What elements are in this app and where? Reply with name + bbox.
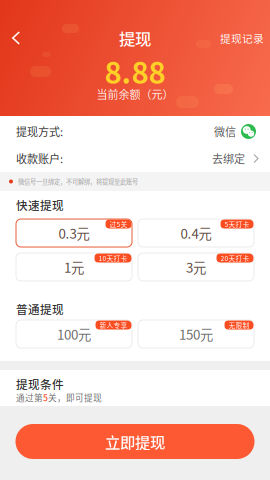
staticText: 5 bbox=[43, 391, 48, 404]
button[interactable]: 0.3元 bbox=[16, 219, 132, 247]
staticText: 微信 bbox=[214, 123, 236, 139]
button[interactable]: 100元 bbox=[16, 320, 132, 348]
staticText: 快速提现 bbox=[16, 197, 64, 213]
button[interactable]: 3元 bbox=[138, 253, 254, 281]
button[interactable]: 提现记录 bbox=[220, 25, 264, 51]
staticText: 150元 bbox=[179, 324, 213, 344]
staticText: 去绑定 bbox=[212, 150, 245, 166]
staticText: 提现方式: bbox=[16, 123, 63, 139]
staticText: 100元 bbox=[57, 324, 91, 344]
button[interactable]: 立即提现 bbox=[15, 424, 254, 459]
button[interactable]: 返回 bbox=[5, 25, 27, 51]
staticText: 提现 bbox=[119, 26, 151, 50]
staticText: 1元 bbox=[64, 257, 84, 277]
staticText: 8.88 bbox=[104, 50, 165, 92]
button[interactable]: 150元 bbox=[138, 320, 254, 348]
staticText: 关，即可提现 bbox=[48, 391, 102, 404]
staticText: 10天打卡 bbox=[98, 253, 127, 263]
staticText: 微信号一旦绑定，不可解绑，将提现至此账号 bbox=[18, 177, 138, 186]
staticText: 新人专享 bbox=[99, 320, 127, 330]
staticText: 提现条件 bbox=[16, 376, 64, 392]
staticText: 立即提现 bbox=[105, 430, 165, 453]
staticText: 5天打卡 bbox=[224, 219, 249, 229]
staticText: 无限制 bbox=[228, 320, 249, 330]
staticText: 普通提现 bbox=[16, 301, 64, 317]
staticText: 当前余额（元） bbox=[96, 86, 173, 102]
staticText: 通过第 bbox=[16, 391, 43, 404]
staticText: 20天打卡 bbox=[220, 253, 249, 263]
staticText: 提现记录 bbox=[220, 30, 264, 46]
button[interactable]: 0.4元 bbox=[138, 219, 254, 247]
staticText: 3元 bbox=[186, 257, 206, 277]
button[interactable]: 1元 bbox=[16, 253, 132, 281]
button[interactable]: 提现方式: bbox=[0, 118, 270, 145]
staticText: 过5关 bbox=[109, 219, 127, 229]
staticText: 收款账户: bbox=[16, 150, 63, 166]
button[interactable]: 收款账户: bbox=[0, 145, 270, 172]
staticText: 0.4元 bbox=[180, 223, 211, 243]
staticText: 0.3元 bbox=[58, 223, 89, 243]
